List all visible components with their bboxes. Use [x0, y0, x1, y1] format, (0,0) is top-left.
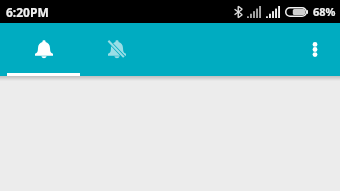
button[interactable]: Notifications on [7, 23, 80, 76]
staticText: 68% [313, 4, 336, 19]
button[interactable]: More options [290, 23, 340, 76]
button[interactable]: Notifications off [80, 23, 153, 76]
staticText: 6:20PM [6, 4, 49, 20]
